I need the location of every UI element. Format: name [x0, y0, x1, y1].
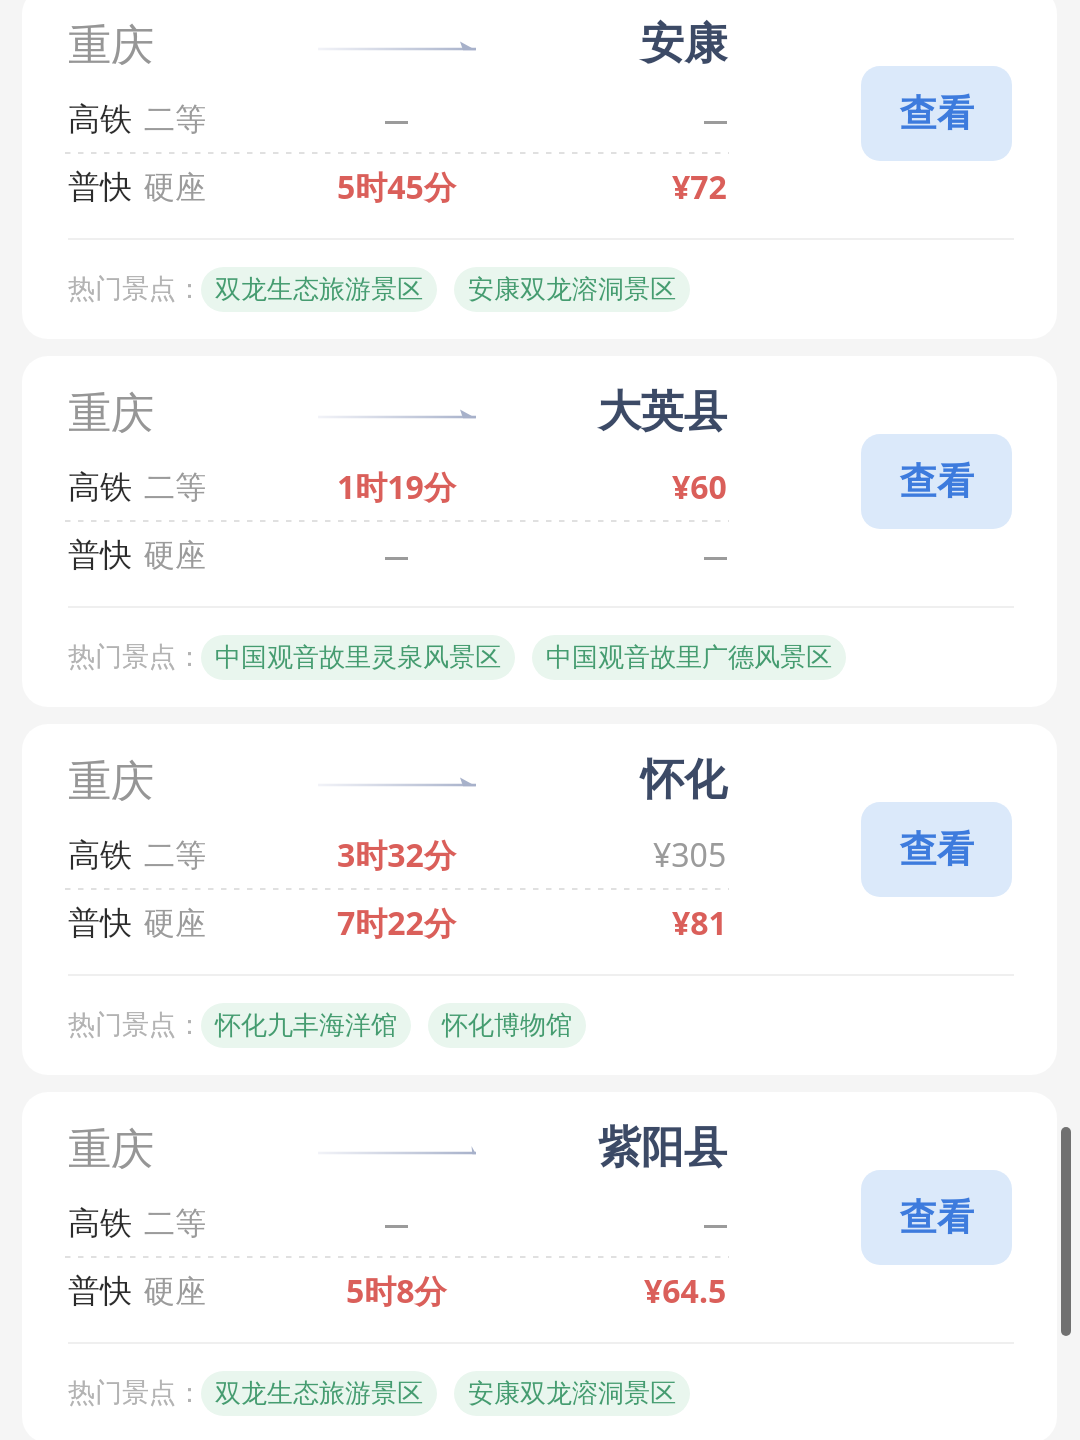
button[interactable]: 双龙生态旅游景区	[201, 1371, 437, 1416]
staticText: 安康双龙溶洞景区	[468, 1377, 676, 1410]
button[interactable]: 查看	[861, 434, 1012, 529]
staticText: 普快	[68, 1271, 132, 1311]
button[interactable]: 查看	[861, 66, 1012, 161]
button[interactable]: 重庆	[22, 1092, 1057, 1440]
other: Route direction	[318, 403, 476, 427]
button[interactable]: 中国观音故里广德风景区	[532, 635, 846, 680]
button[interactable]: 怀化博物馆	[428, 1003, 586, 1048]
staticText: 中国观音故里灵泉风景区	[215, 641, 501, 674]
staticText: 查看	[900, 458, 974, 505]
button[interactable]: 双龙生态旅游景区	[201, 267, 437, 312]
staticText: 普快	[68, 535, 132, 575]
button[interactable]: 安康双龙溶洞景区	[454, 267, 690, 312]
button[interactable]: 重庆	[22, 356, 1057, 707]
staticText: 5时8分	[346, 1269, 447, 1313]
button[interactable]: 查看	[861, 802, 1012, 897]
other: Route direction	[318, 771, 476, 795]
staticText: ¥72	[672, 165, 727, 209]
other: Route direction	[318, 1139, 476, 1163]
staticText: 怀化博物馆	[442, 1009, 572, 1042]
staticText: 5时45分	[337, 165, 456, 209]
staticText: 紫阳县	[598, 1121, 727, 1175]
staticText: 热门景点：	[68, 1376, 203, 1410]
staticText: 1时19分	[337, 465, 456, 509]
staticText: 二等	[144, 836, 206, 875]
staticText: 二等	[144, 468, 206, 507]
staticText: 安康	[641, 17, 727, 71]
staticText: 重庆	[68, 755, 154, 809]
staticText: 怀化	[641, 753, 727, 807]
button[interactable]: 安康双龙溶洞景区	[454, 1371, 690, 1416]
staticText: ¥305	[653, 833, 727, 877]
staticText: 重庆	[68, 1123, 154, 1177]
staticText: 硬座	[144, 904, 206, 943]
button[interactable]: 重庆	[22, 0, 1057, 339]
staticText: 高铁	[68, 1203, 132, 1243]
staticText: 高铁	[68, 99, 132, 139]
staticText: 硬座	[144, 168, 206, 207]
staticText: ¥81	[672, 901, 727, 945]
staticText: 热门景点：	[68, 1008, 203, 1042]
staticText: 普快	[68, 167, 132, 207]
staticText: 热门景点：	[68, 640, 203, 674]
staticText: ¥64.5	[644, 1269, 727, 1313]
staticText: 高铁	[68, 467, 132, 507]
staticText: 二等	[144, 100, 206, 139]
staticText: 7时22分	[337, 901, 456, 945]
staticText: 重庆	[68, 19, 154, 73]
staticText: 3时32分	[337, 833, 456, 877]
button[interactable]: 重庆	[22, 724, 1057, 1075]
staticText: 硬座	[144, 1272, 206, 1311]
staticText: 查看	[900, 90, 974, 137]
staticText: 查看	[900, 826, 974, 873]
other: Route direction	[318, 35, 476, 59]
button[interactable]: 中国观音故里灵泉风景区	[201, 635, 515, 680]
staticText: 双龙生态旅游景区	[215, 1377, 423, 1410]
staticText: 重庆	[68, 387, 154, 441]
staticText: 二等	[144, 1204, 206, 1243]
staticText: 硬座	[144, 536, 206, 575]
staticText: 高铁	[68, 835, 132, 875]
staticText: 普快	[68, 903, 132, 943]
staticText: 双龙生态旅游景区	[215, 273, 423, 306]
staticText: ¥60	[672, 465, 727, 509]
staticText: 安康双龙溶洞景区	[468, 273, 676, 306]
button[interactable]: 查看	[861, 1170, 1012, 1265]
staticText: 热门景点：	[68, 272, 203, 306]
staticText: 大英县	[598, 385, 727, 439]
button[interactable]: 怀化九丰海洋馆	[201, 1003, 411, 1048]
staticText: 查看	[900, 1194, 974, 1241]
staticText: 中国观音故里广德风景区	[546, 641, 832, 674]
staticText: 怀化九丰海洋馆	[215, 1009, 397, 1042]
